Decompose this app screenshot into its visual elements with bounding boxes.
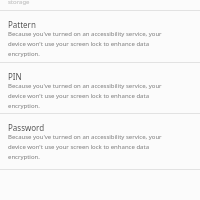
button[interactable]: PIN	[0, 63, 200, 114]
staticText: device won't use your screen lock to enh…	[8, 143, 150, 151]
staticText: Pattern	[8, 19, 36, 30]
button[interactable]: Password	[0, 114, 200, 165]
staticText: Because you've turned on an accessibilit…	[8, 82, 162, 90]
staticText: PIN	[8, 71, 22, 82]
staticText: Password	[8, 122, 45, 133]
staticText: Because you've turned on an accessibilit…	[8, 133, 162, 141]
staticText: encryption.	[8, 102, 40, 110]
staticText: storage	[8, 0, 30, 6]
staticText: Because you've turned on an accessibilit…	[8, 30, 162, 38]
staticText: encryption.	[8, 50, 40, 58]
staticText: device won't use your screen lock to enh…	[8, 92, 150, 100]
staticText: device won't use your screen lock to enh…	[8, 40, 150, 48]
button[interactable]: Pattern	[0, 11, 200, 62]
staticText: encryption.	[8, 153, 40, 161]
